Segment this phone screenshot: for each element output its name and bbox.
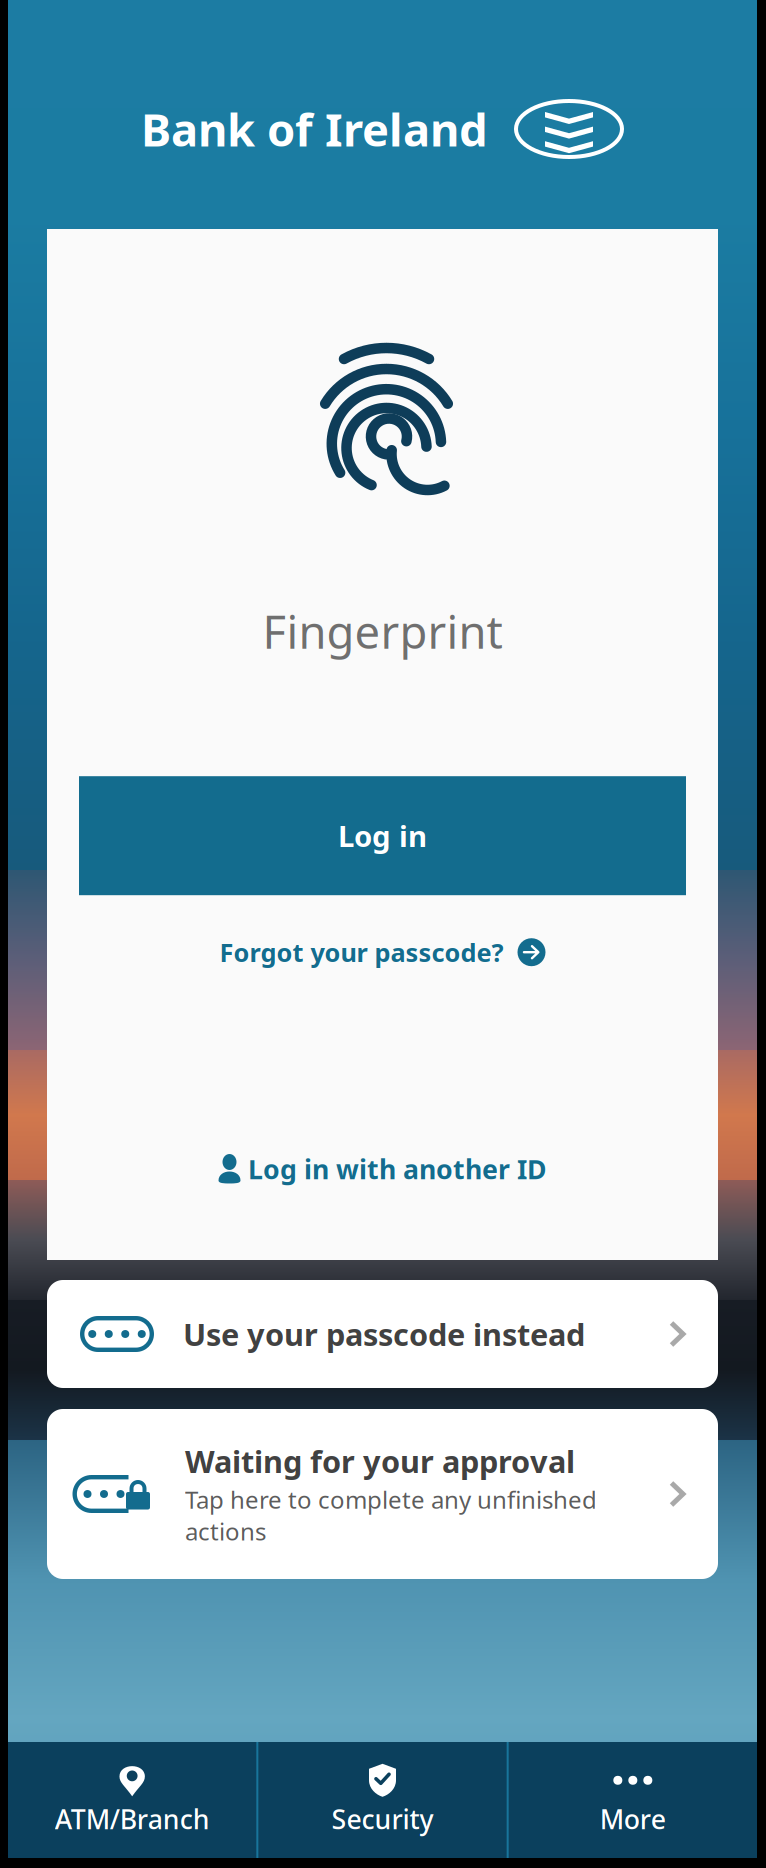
staticText: Forgot your passcode?	[219, 935, 503, 969]
button[interactable]: Log in	[79, 776, 686, 895]
button[interactable]: Forgot your passcode?	[219, 930, 545, 974]
staticText: Log in with another ID	[248, 1151, 547, 1187]
staticText: Log in	[338, 816, 427, 855]
staticText: More	[600, 1801, 666, 1837]
staticText: Use your passcode instead	[183, 1314, 585, 1354]
staticText: Bank of Ireland	[141, 99, 488, 159]
staticText: Waiting for your approval	[185, 1441, 575, 1481]
button[interactable]: More	[509, 1742, 757, 1858]
staticText: Fingerprint	[262, 601, 502, 661]
button[interactable]: Use your passcode instead	[47, 1280, 718, 1388]
button[interactable]: Waiting for your approval	[47, 1409, 718, 1579]
staticText: Security	[331, 1801, 433, 1837]
button[interactable]: ATM/Branch	[8, 1742, 256, 1858]
staticText: ATM/Branch	[55, 1801, 210, 1837]
staticText: Tap here to complete any unfinished acti…	[185, 1483, 597, 1547]
button[interactable]: Security	[258, 1742, 507, 1858]
button[interactable]: Log in with another ID	[218, 1149, 547, 1189]
